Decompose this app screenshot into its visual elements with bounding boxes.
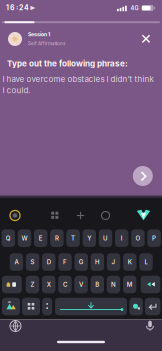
staticText: X: [47, 281, 51, 288]
staticText: J: [112, 258, 116, 266]
staticText: I have overcome obstacles I didn't think: [2, 74, 153, 84]
staticText: L: [144, 258, 147, 266]
button[interactable]: O: [131, 229, 145, 247]
button[interactable]: F: [58, 253, 72, 271]
button[interactable]: Backspace: [141, 276, 160, 293]
button[interactable]: G: [74, 253, 88, 271]
staticText: I could.: [2, 85, 30, 95]
staticText: 1 6 : 2 4: [6, 4, 29, 12]
button[interactable]: L: [139, 253, 153, 271]
staticText: Session 1: [28, 31, 50, 37]
button[interactable]: Stickers: [50, 210, 60, 220]
button[interactable]: T: [66, 229, 80, 247]
staticText: R: [55, 234, 59, 242]
button[interactable]: N: [107, 276, 120, 293]
button[interactable]: Return: [145, 298, 160, 315]
staticText: I: [121, 234, 123, 242]
staticText: T: [71, 234, 75, 242]
staticText: A: [14, 258, 18, 266]
button[interactable]: U: [99, 229, 112, 247]
button[interactable]: Voice input: [129, 298, 143, 315]
staticText: W: [21, 234, 27, 242]
staticText: Z: [30, 281, 34, 288]
button[interactable]: K: [123, 253, 136, 271]
button[interactable]: Q: [2, 229, 15, 247]
button[interactable]: A: [10, 253, 23, 271]
button[interactable]: Clipboard: [101, 211, 109, 219]
staticText: N: [111, 281, 116, 288]
staticText: C: [63, 281, 67, 288]
button[interactable]: Punctuation: [42, 298, 52, 315]
button[interactable]: E: [34, 229, 47, 247]
staticText: B: [95, 281, 99, 288]
staticText: G: [79, 258, 84, 266]
button[interactable]: S: [26, 253, 39, 271]
staticText: P: [152, 234, 156, 242]
button[interactable]: Emoji: [22, 298, 40, 315]
button[interactable]: Y: [83, 229, 96, 247]
button[interactable]: V: [74, 276, 88, 293]
staticText: 4G: [130, 5, 138, 12]
button[interactable]: X: [42, 276, 55, 293]
button[interactable]: Switch keyboard: [2, 298, 20, 315]
staticText: S: [31, 258, 35, 266]
button[interactable]: Suggestions: [9, 210, 20, 221]
staticText: H: [95, 258, 100, 266]
button[interactable]: D: [42, 253, 55, 271]
button[interactable]: Shift: [2, 276, 22, 293]
button[interactable]: Dictate: [145, 319, 155, 331]
button[interactable]: Close: [139, 32, 153, 46]
button[interactable]: Next: [133, 166, 153, 186]
button[interactable]: W: [18, 229, 31, 247]
staticText: Type out the following phrase:: [7, 59, 128, 68]
button[interactable]: R: [50, 229, 64, 247]
staticText: U: [103, 234, 108, 242]
staticText: M: [127, 281, 133, 288]
staticText: Self Affirmations: [28, 41, 65, 46]
button[interactable]: I: [115, 229, 128, 247]
button[interactable]: H: [91, 253, 104, 271]
staticText: O: [135, 234, 140, 242]
staticText: F: [63, 258, 67, 266]
staticText: Q: [6, 234, 11, 242]
button[interactable]: Switch keyboard: [10, 320, 21, 331]
button[interactable]: B: [91, 276, 104, 293]
staticText: D: [47, 258, 51, 266]
button[interactable]: J: [107, 253, 120, 271]
button[interactable]: Keyboard menu: [136, 209, 150, 220]
staticText: Y: [87, 234, 91, 242]
button[interactable]: Space: [55, 298, 127, 315]
button[interactable]: P: [147, 229, 161, 247]
button[interactable]: C: [58, 276, 72, 293]
button[interactable]: Cursor control: [76, 211, 85, 220]
staticText: V: [79, 281, 83, 288]
staticText: E: [39, 234, 43, 242]
button[interactable]: Z: [26, 276, 39, 293]
button[interactable]: M: [123, 276, 136, 293]
staticText: K: [128, 258, 132, 266]
